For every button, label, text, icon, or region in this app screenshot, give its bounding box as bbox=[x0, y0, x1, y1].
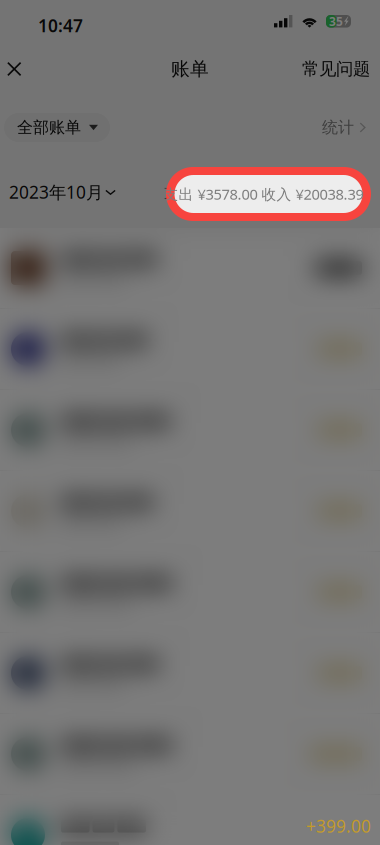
staticText: 统计 bbox=[322, 118, 354, 137]
button[interactable]: 2023年10月 bbox=[9, 180, 116, 204]
button[interactable]: 全部账单 bbox=[4, 113, 110, 142]
staticText: +399.00 bbox=[306, 814, 371, 837]
staticText: 常见问题 bbox=[302, 58, 370, 80]
button[interactable] bbox=[0, 309, 380, 390]
button[interactable]: Close bbox=[7, 47, 37, 91]
button[interactable] bbox=[0, 633, 380, 714]
button[interactable] bbox=[0, 471, 380, 552]
button[interactable] bbox=[0, 390, 380, 471]
button[interactable] bbox=[0, 228, 380, 309]
button[interactable] bbox=[0, 795, 380, 845]
staticText: 支出 ¥3578.00 收入 ¥20038.39 bbox=[164, 182, 364, 202]
staticText: 35 bbox=[329, 13, 343, 29]
staticText: 账单 bbox=[171, 57, 209, 80]
staticText: 全部账单 bbox=[17, 118, 81, 137]
staticText: 2023年10月 bbox=[9, 180, 103, 203]
staticText: 支出 ¥3578.00 收入 ¥20038.39 bbox=[163, 184, 363, 204]
button[interactable]: 常见问题 bbox=[300, 47, 372, 91]
button[interactable]: 统计 bbox=[322, 113, 368, 142]
button[interactable] bbox=[0, 552, 380, 633]
staticText: 10:47 bbox=[38, 14, 83, 37]
button[interactable] bbox=[0, 714, 380, 795]
